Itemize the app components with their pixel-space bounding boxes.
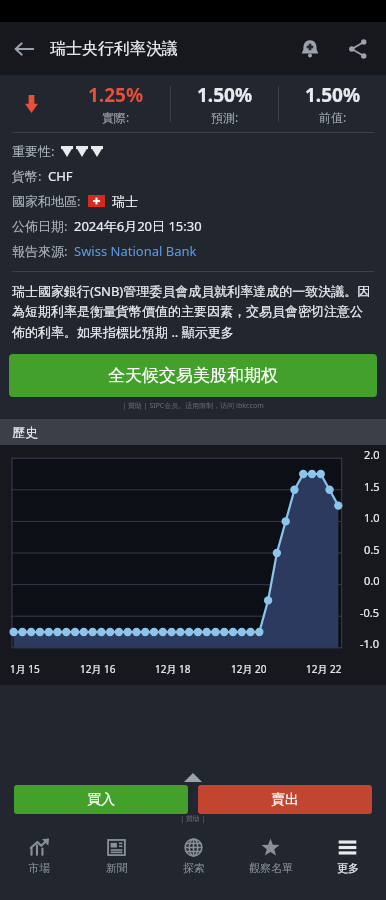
button[interactable]: Add alert <box>286 25 334 73</box>
staticText: 報告來源: <box>12 242 68 260</box>
staticText: 國家和地區: <box>12 192 81 210</box>
staticText: 歷史 <box>12 424 38 440</box>
staticText: 1月 15 <box>10 662 40 676</box>
staticText: 貨幣: <box>12 167 42 185</box>
staticText: 公佈日期: <box>12 217 68 235</box>
staticText: 1.5 <box>364 479 380 494</box>
staticText: 新聞 <box>106 861 128 875</box>
staticText: 瑞士 <box>112 193 138 209</box>
button[interactable]: 市場 <box>0 830 78 882</box>
staticText: Swiss National Bank <box>74 242 197 260</box>
button[interactable]: Share <box>334 25 382 73</box>
staticText: 1.0 <box>364 510 380 525</box>
staticText: 0.5 <box>364 542 380 557</box>
staticText: 買入 <box>87 791 115 809</box>
staticText: 2.0 <box>364 447 380 462</box>
staticText: 12月 18 <box>155 662 191 676</box>
staticText: 12月 16 <box>80 662 116 676</box>
staticText: 12月 20 <box>231 662 267 676</box>
staticText: 1.50% <box>197 82 253 108</box>
staticText: 12月 22 <box>306 662 342 676</box>
staticText: | 贊助 | <box>0 814 386 824</box>
staticText: 重要性: <box>12 142 55 160</box>
button[interactable]: 全天候交易美股和期权 <box>9 354 377 397</box>
staticText: 市場 <box>28 861 50 875</box>
staticText: -0.5 <box>360 605 380 620</box>
staticText: 預測: <box>211 109 239 125</box>
staticText: 0.0 <box>364 573 380 588</box>
staticText: 1.50% <box>305 82 361 108</box>
staticText: 觀察名單 <box>249 861 293 875</box>
staticText: 全天候交易美股和期权 <box>108 365 278 386</box>
button[interactable]: 探索 <box>155 830 232 882</box>
button[interactable]: 報告來源: <box>12 242 197 260</box>
staticText: 更多 <box>337 861 359 875</box>
button[interactable]: 觀察名單 <box>232 830 309 882</box>
button[interactable]: Back <box>0 25 48 73</box>
staticText: 前值: <box>319 109 347 125</box>
staticText: 探索 <box>183 861 205 875</box>
button[interactable]: 新聞 <box>78 830 155 882</box>
staticText: 1.25% <box>88 82 144 108</box>
button[interactable]: 買入 <box>14 785 188 814</box>
staticText: 賣出 <box>271 791 299 809</box>
button[interactable]: 更多 <box>309 830 386 882</box>
button[interactable]: 賣出 <box>198 785 372 814</box>
staticText: 2024年6月20日 15:30 <box>74 217 202 235</box>
staticText: -1.0 <box>360 636 380 651</box>
staticText: | 贊助 | SIPC会员。适用限制，访问 ibkr.com <box>0 401 386 411</box>
staticText: 實際: <box>102 109 130 125</box>
staticText: 瑞士央行利率決議 <box>50 39 286 59</box>
button[interactable]: 瑞士國家銀行(SNB)管理委員會成員就利率達成的一致決議。因為短期利率是衡量貨幣… <box>12 282 374 341</box>
staticText: CHF <box>48 167 73 185</box>
